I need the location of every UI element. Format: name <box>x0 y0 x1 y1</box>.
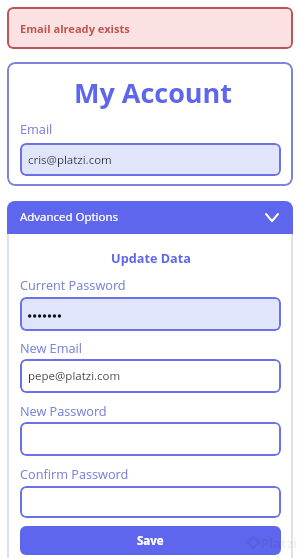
staticText: Email already exists <box>20 21 130 36</box>
staticText: Advanced Options <box>20 209 118 225</box>
button[interactable]: cris@platzi.com <box>20 143 281 176</box>
staticText: Confirm Password <box>20 465 129 482</box>
staticText: Email <box>20 120 53 137</box>
staticText: New Password <box>20 402 107 419</box>
staticText: New Email <box>20 339 82 356</box>
staticText: My Account <box>10 74 296 111</box>
staticText: pepe@platzi.com <box>28 368 121 384</box>
staticText: cris@platzi.com <box>28 152 112 168</box>
button[interactable] <box>20 422 281 456</box>
staticText: Save <box>137 533 164 549</box>
button[interactable]: Advanced Options <box>7 201 293 234</box>
staticText: Update Data <box>20 249 282 266</box>
button[interactable] <box>20 297 281 331</box>
button[interactable]: Save <box>20 526 281 555</box>
button[interactable] <box>20 486 281 518</box>
button[interactable]: pepe@platzi.com <box>20 359 281 393</box>
staticText: Current Password <box>20 276 126 293</box>
other: Collapse advanced options <box>265 213 279 222</box>
staticText: Platzi <box>261 534 297 552</box>
button[interactable]: Email already exists <box>7 7 293 49</box>
